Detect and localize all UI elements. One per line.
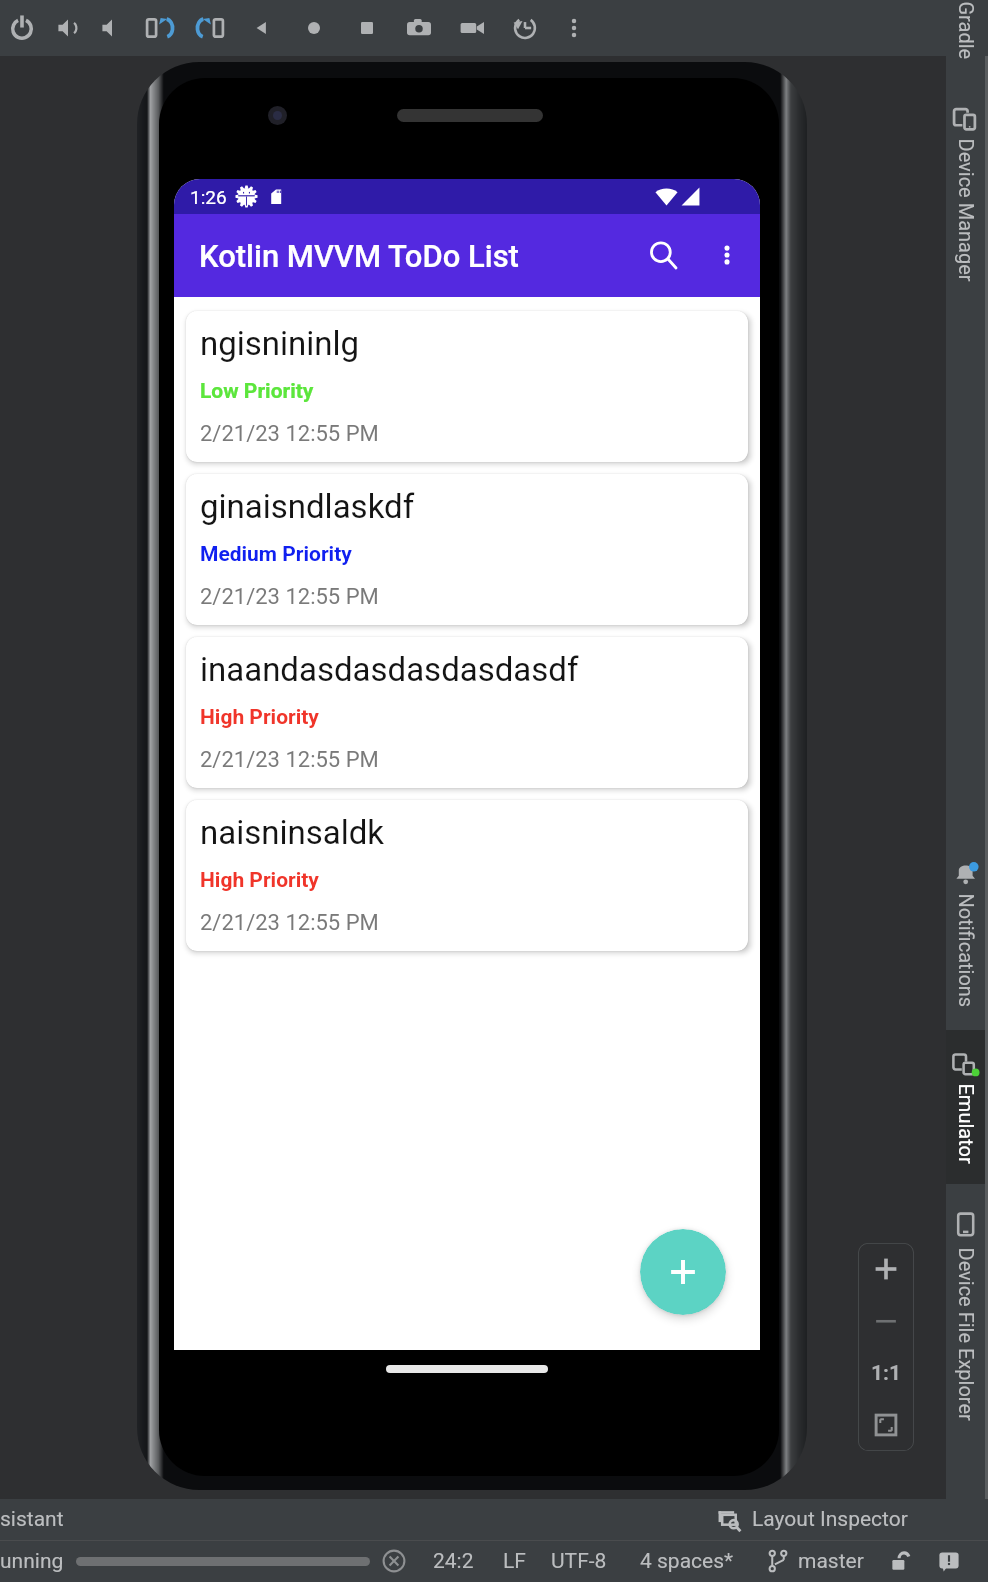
staticText: High Priority [200, 868, 319, 893]
button[interactable]: Problems [937, 1549, 961, 1573]
button[interactable]: Zoom out [858, 1295, 914, 1347]
staticText: UTF-8 [551, 1549, 607, 1574]
button[interactable]: LF [503, 1540, 988, 1582]
button[interactable] [946, 98, 985, 328]
staticText: 2/21/23 12:55 PM [200, 747, 379, 773]
button[interactable]: master [798, 1540, 988, 1582]
staticText: 2/21/23 12:55 PM [200, 910, 379, 936]
button[interactable]: More [551, 2, 597, 54]
staticText: 24:2 [433, 1549, 474, 1574]
button[interactable]: Record screen [449, 2, 495, 54]
staticText: Device Manager [954, 138, 977, 282]
staticText: naisninsaldk [200, 813, 385, 852]
button[interactable]: naisninsaldk [186, 800, 748, 951]
button[interactable]: Back [239, 2, 285, 54]
button[interactable]: Zoom in [858, 1243, 914, 1295]
button[interactable]: inaandasdasdasdasdasdf [186, 637, 748, 788]
button[interactable]: 4 spaces* [640, 1540, 988, 1582]
staticText: Low Priority [200, 379, 314, 404]
button[interactable]: Git branch [766, 1549, 790, 1573]
button[interactable]: Volume down [89, 2, 135, 54]
staticText: 4 spaces* [640, 1549, 734, 1574]
button[interactable]: ginaisndlaskdf [186, 474, 748, 625]
button[interactable]: Search [632, 224, 694, 286]
button[interactable]: Cancel [380, 1547, 408, 1575]
staticText: Device File Explorer [954, 1247, 977, 1421]
staticText: 2/21/23 12:55 PM [200, 421, 379, 447]
staticText: 1:26 [190, 186, 227, 208]
staticText: unning [0, 1549, 64, 1574]
button[interactable] [946, 0, 985, 52]
button[interactable]: Home [291, 2, 337, 54]
staticText: LF [503, 1549, 526, 1574]
button[interactable] [946, 852, 985, 1024]
staticText: Medium Priority [200, 542, 352, 567]
staticText: 2/21/23 12:55 PM [200, 584, 379, 610]
button[interactable] [946, 1200, 985, 1460]
button[interactable]: Take screenshot [396, 2, 442, 54]
button[interactable]: Snapshots [502, 2, 548, 54]
button[interactable]: ngisnininlg [186, 311, 748, 462]
button[interactable]: Rotate left [137, 2, 183, 54]
button[interactable]: Volume up [45, 2, 91, 54]
staticText: High Priority [200, 705, 319, 730]
staticText: Layout Inspector [752, 1507, 908, 1532]
button[interactable]: Overview [344, 2, 390, 54]
staticText: sistant [0, 1507, 64, 1532]
button[interactable]: Add task [640, 1229, 726, 1315]
button[interactable]: UTF-8 [551, 1540, 988, 1582]
staticText: ngisnininlg [200, 324, 360, 363]
button[interactable]: Lock [889, 1549, 913, 1573]
staticText: ginaisndlaskdf [200, 487, 415, 526]
button[interactable]: More options [696, 224, 758, 286]
button[interactable] [946, 1030, 985, 1184]
staticText: Kotlin MVVM ToDo List [199, 238, 519, 274]
staticText: master [798, 1549, 864, 1574]
button[interactable]: Power [0, 2, 45, 54]
button[interactable]: Fit to screen [858, 1399, 914, 1451]
staticText: inaandasdasdasdasdasdf [200, 650, 579, 689]
button[interactable]: Layout Inspector [712, 1499, 913, 1540]
staticText: Notifications [954, 893, 977, 1007]
staticText: 1:1 [871, 1361, 902, 1386]
staticText: Gradle [954, 1, 977, 59]
button[interactable]: Rotate right [187, 2, 233, 54]
button[interactable]: 24:2 [433, 1540, 988, 1582]
staticText: Emulator [954, 1083, 977, 1164]
button[interactable]: Actual size [858, 1347, 914, 1399]
